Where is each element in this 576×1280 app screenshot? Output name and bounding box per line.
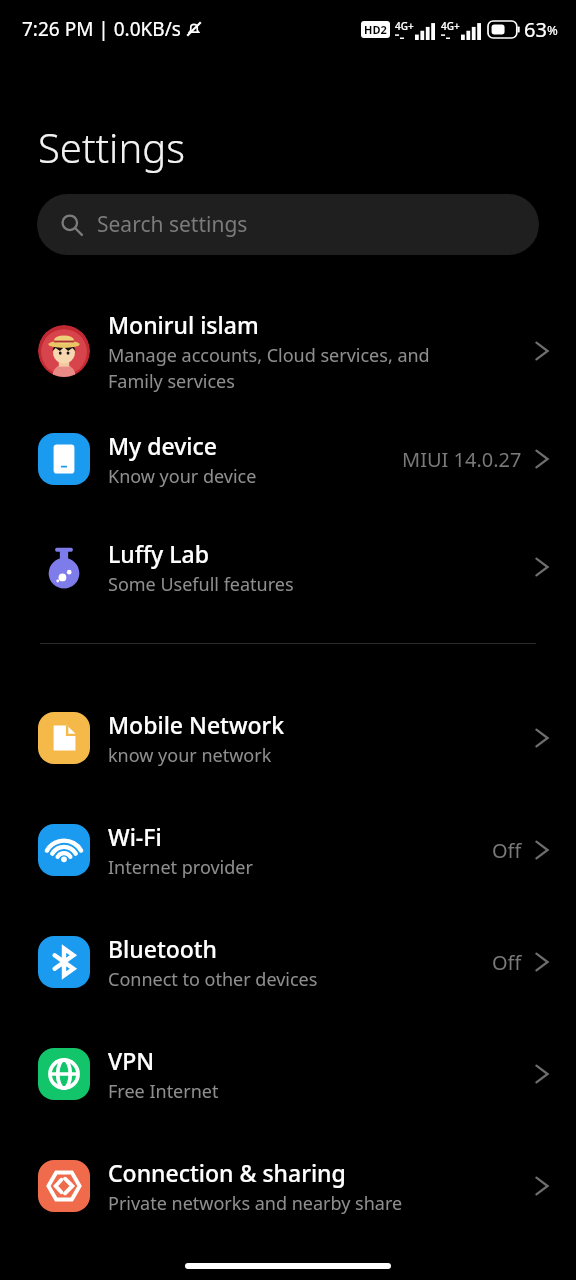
staticText: Internet provider xyxy=(108,855,253,880)
staticText: % xyxy=(547,21,558,39)
staticText: Search settings xyxy=(97,210,248,239)
staticText: VPN xyxy=(108,1045,155,1076)
staticText: Mobile Network xyxy=(108,709,285,740)
staticText: 63 xyxy=(524,16,547,43)
staticText: My device xyxy=(108,430,218,461)
staticText: Off xyxy=(492,837,522,864)
button[interactable]: Wi-Fi xyxy=(0,794,576,906)
staticText: Connection & sharing xyxy=(108,1157,346,1188)
button[interactable]: Luffy Lab xyxy=(0,513,576,621)
staticText: Luffy Lab xyxy=(108,538,209,569)
staticText: Know your device xyxy=(108,464,257,489)
staticText: 4G+ xyxy=(441,19,460,33)
staticText: Free Internet xyxy=(108,1079,219,1104)
staticText: Bluetooth xyxy=(108,933,218,964)
staticText: HD2 xyxy=(364,22,387,37)
button[interactable]: Connection & sharing xyxy=(0,1130,576,1242)
staticText: Wi-Fi xyxy=(108,821,162,852)
button[interactable]: My device xyxy=(0,405,576,513)
staticText: Settings xyxy=(38,120,185,174)
staticText: 4G+ xyxy=(395,19,414,33)
button[interactable]: Search settings xyxy=(37,194,539,255)
staticText: Connect to other devices xyxy=(108,967,318,992)
button[interactable]: Monirul islam xyxy=(0,297,576,405)
staticText: Some Usefull features xyxy=(108,572,294,597)
button[interactable]: Mobile Network xyxy=(0,682,576,794)
staticText: Monirul islam xyxy=(108,309,259,340)
staticText: know your network xyxy=(108,743,272,768)
button[interactable]: Bluetooth xyxy=(0,906,576,1018)
staticText: 7:26 PM | 0.0KB/s xyxy=(22,16,181,42)
staticText: Manage accounts, Cloud services, and Fam… xyxy=(108,343,430,393)
staticText: MIUI 14.0.27 xyxy=(402,446,522,473)
staticText: Off xyxy=(492,949,522,976)
staticText: Private networks and nearby share xyxy=(108,1191,403,1216)
button[interactable]: VPN xyxy=(0,1018,576,1130)
